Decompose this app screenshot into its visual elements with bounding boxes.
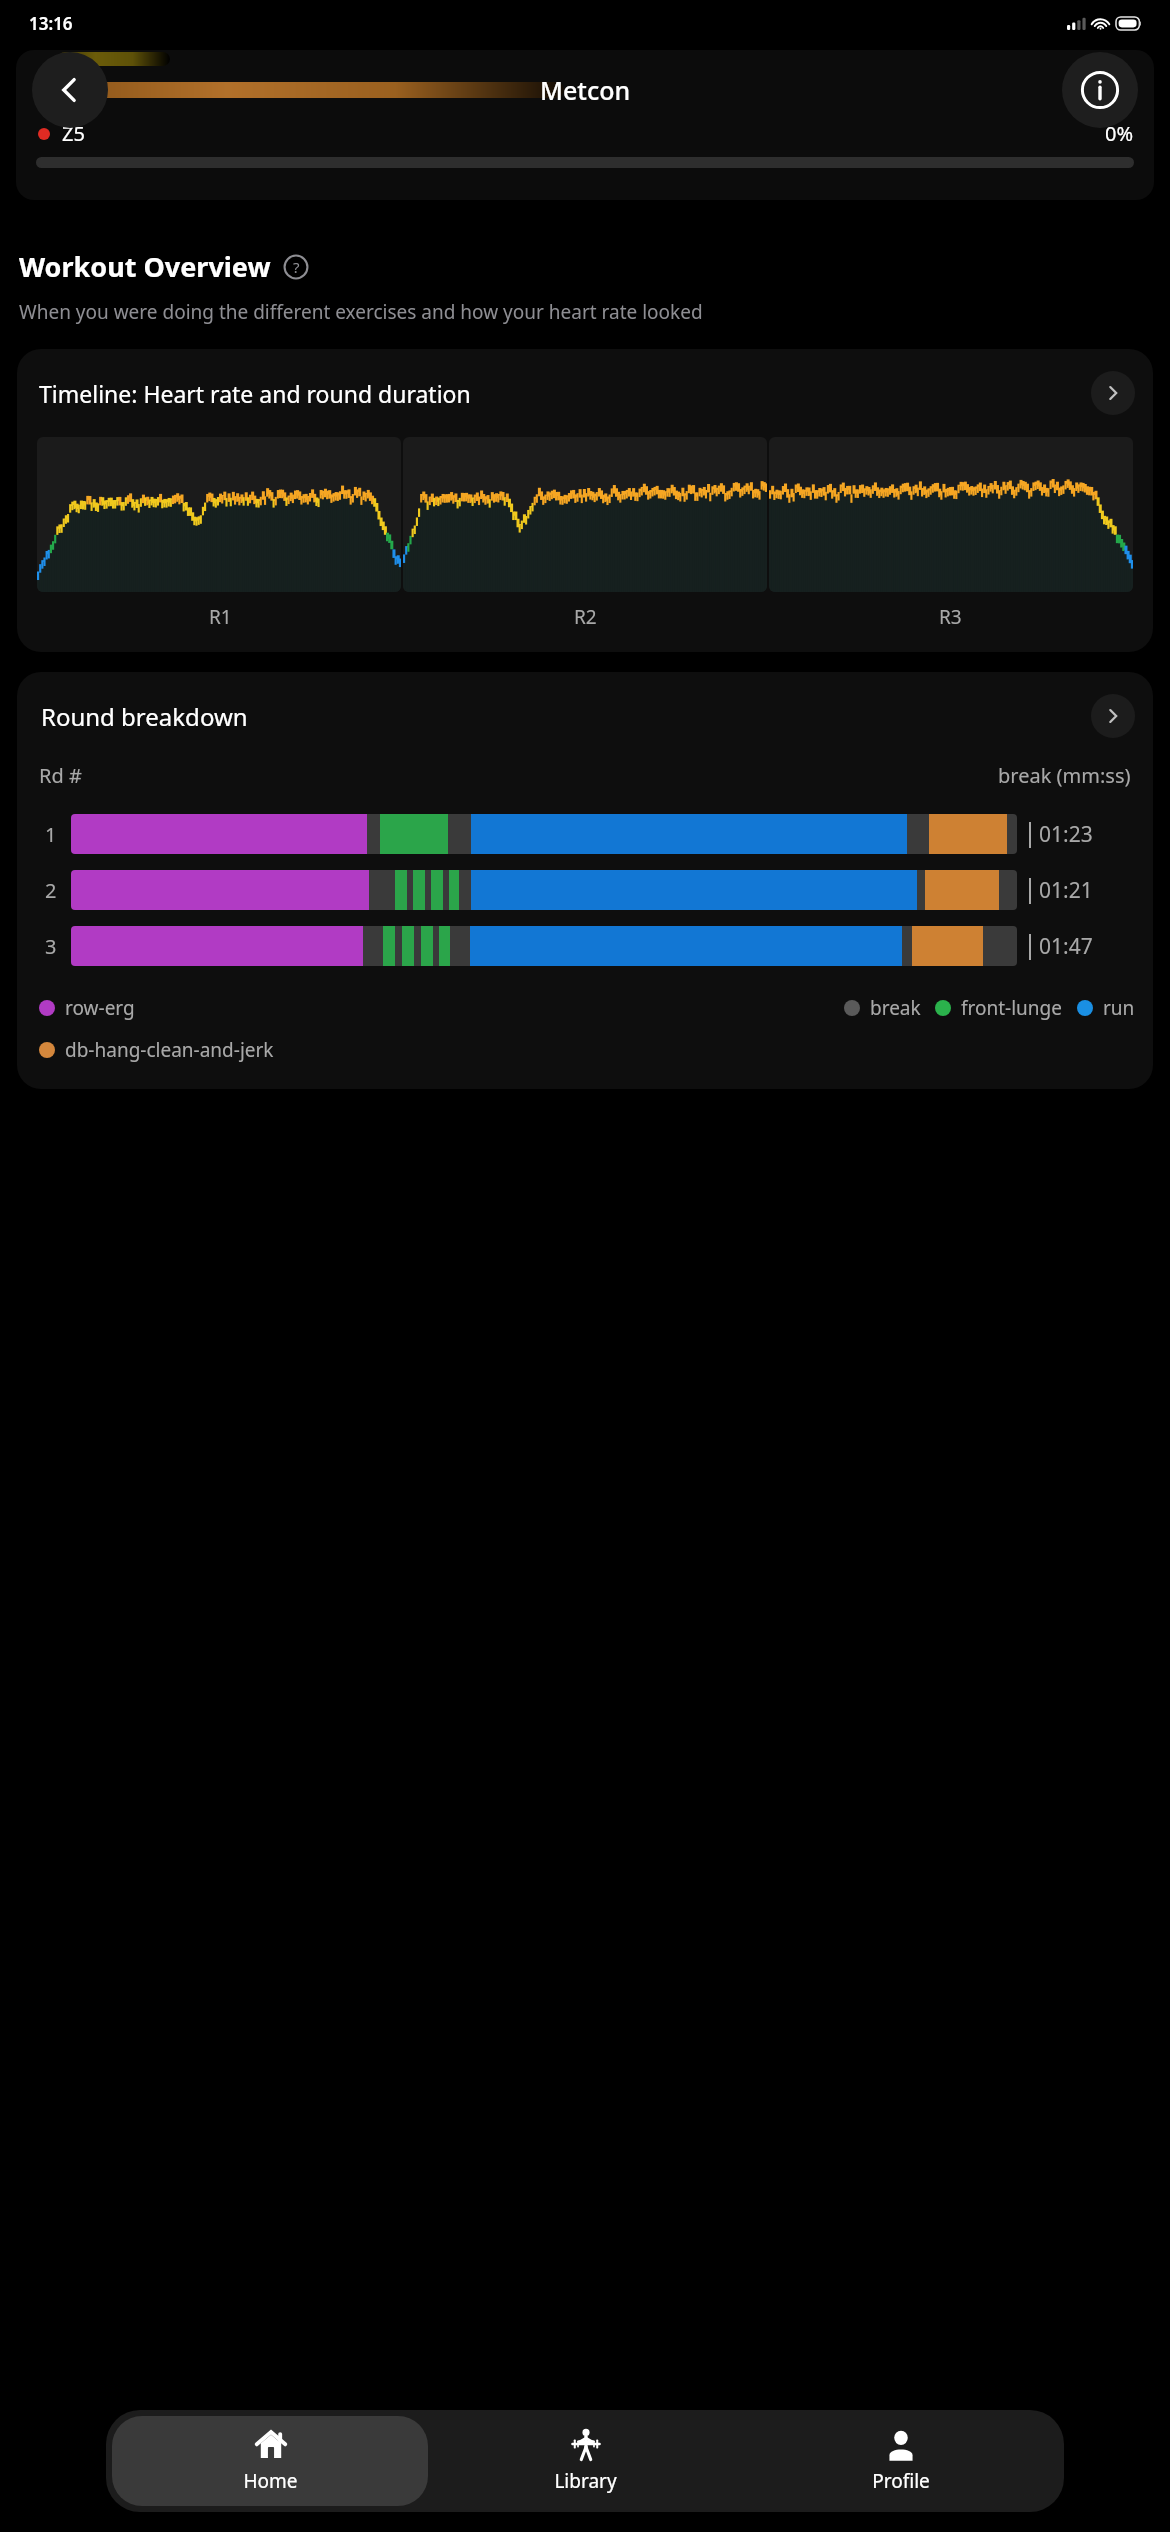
staticText: Library: [554, 2468, 617, 2494]
button[interactable]: Round breakdown: [17, 672, 1153, 1089]
staticText: ?: [293, 257, 300, 277]
staticText: 01:21: [1039, 876, 1093, 905]
staticText: 3: [45, 933, 57, 960]
staticText: R1: [209, 604, 232, 630]
button[interactable]: Timeline: Heart rate and round duration: [17, 349, 1153, 652]
staticText: Round breakdown: [41, 700, 248, 733]
staticText: 2: [45, 877, 57, 904]
staticText: Home: [243, 2468, 298, 2494]
staticText: Timeline: Heart rate and round duration: [39, 378, 471, 409]
staticText: Workout Overview: [19, 248, 271, 285]
staticText: When you were doing the different exerci…: [19, 299, 703, 325]
button[interactable]: Library: [428, 2416, 743, 2506]
staticText: front-lunge: [961, 995, 1063, 1021]
staticText: 01:47: [1039, 932, 1093, 961]
staticText: R3: [939, 604, 962, 630]
button[interactable]: Help: [283, 254, 309, 280]
staticText: 0%: [1105, 120, 1134, 147]
button[interactable]: Open timeline: [1091, 371, 1135, 415]
button[interactable]: Back: [32, 52, 108, 128]
staticText: 1: [45, 821, 57, 848]
button[interactable]: Open round breakdown: [1091, 694, 1135, 738]
staticText: db-hang-clean-and-jerk: [65, 1037, 274, 1063]
button[interactable]: Info: [1062, 52, 1138, 128]
staticText: 13:16: [29, 12, 73, 35]
staticText: R2: [574, 604, 597, 630]
staticText: row-erg: [65, 995, 135, 1021]
staticText: Rd #: [39, 762, 82, 789]
staticText: Profile: [872, 2468, 930, 2494]
button[interactable]: Profile: [743, 2416, 1058, 2506]
staticText: run: [1103, 995, 1135, 1021]
staticText: Z5: [62, 120, 85, 147]
staticText: break: [870, 995, 921, 1021]
button[interactable]: Home: [112, 2416, 428, 2506]
staticText: break (mm:ss): [998, 762, 1131, 789]
staticText: 01:23: [1039, 820, 1093, 849]
staticText: Metcon: [540, 73, 631, 107]
